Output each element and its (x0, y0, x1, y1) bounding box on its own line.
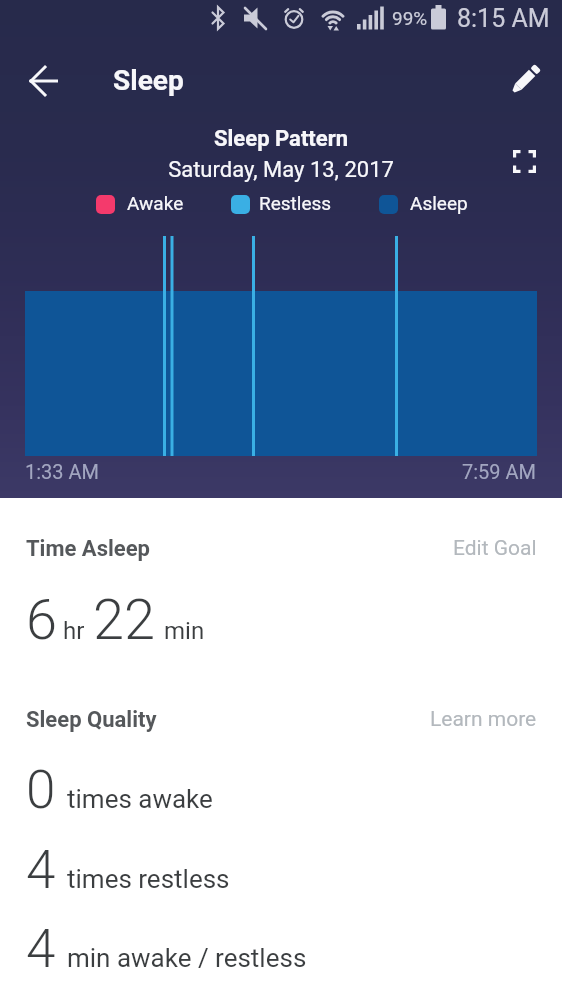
staticText: 8:15 AM (457, 4, 550, 33)
staticText: Saturday, May 13, 2017 (0, 157, 562, 183)
staticText: 99% (392, 7, 428, 29)
staticText: 7:59 AM (462, 460, 537, 483)
staticText: Restless (259, 192, 332, 214)
staticText: Sleep Quality (26, 707, 157, 733)
button[interactable] (506, 144, 542, 180)
staticText: times awake (67, 784, 213, 814)
button[interactable] (20, 57, 68, 105)
staticText: Time Asleep (26, 536, 150, 562)
staticText: Asleep (410, 192, 468, 214)
button[interactable]: Edit Goal (453, 536, 537, 561)
staticText: 4 (26, 918, 56, 980)
staticText: 22 (93, 587, 156, 653)
staticText: 0 (26, 759, 56, 821)
button[interactable]: Learn more (430, 707, 537, 732)
staticText: 4 (26, 839, 56, 901)
staticText: times restless (67, 864, 230, 894)
staticText: 6 (26, 587, 58, 653)
staticText: hr (63, 617, 85, 645)
staticText: Sleep (113, 64, 184, 97)
staticText: Sleep Pattern (0, 126, 562, 152)
staticText: min (164, 617, 205, 645)
button[interactable] (500, 57, 548, 105)
staticText: min awake / restless (67, 943, 307, 973)
staticText: Awake (127, 192, 184, 214)
staticText: 1:33 AM (25, 460, 100, 483)
